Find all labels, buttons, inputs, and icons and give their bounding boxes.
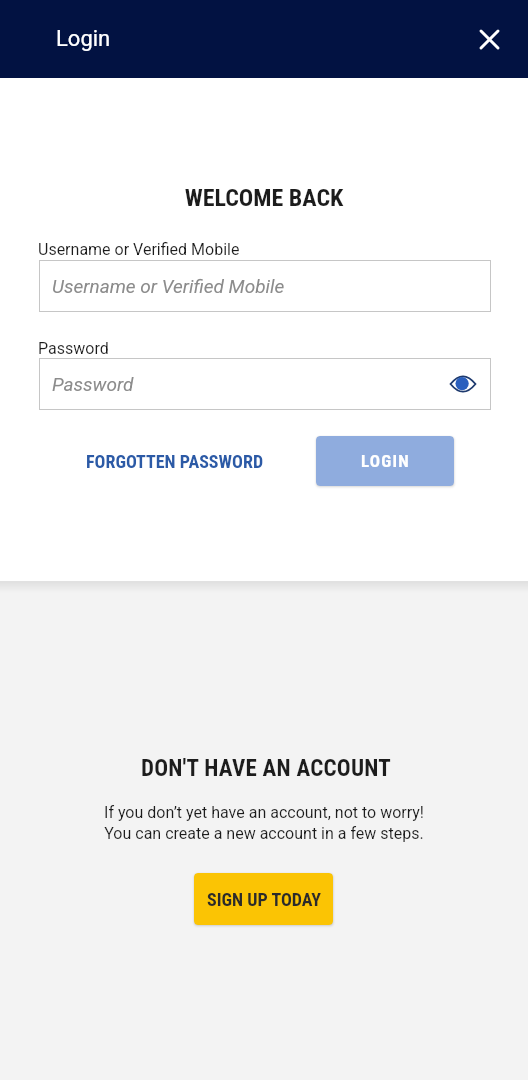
staticText: Username or Verified Mobile [52,275,285,297]
button[interactable]: Password [39,358,491,410]
staticText: Password [52,373,134,395]
staticText: WELCOME BACK [0,184,528,212]
staticText: DON'T HAVE AN ACCOUNT [2,755,528,782]
staticText: FORGOTTEN PASSWORD [86,451,264,472]
button[interactable]: SIGN UP TODAY [194,873,333,925]
staticText: Password [38,339,109,358]
button[interactable]: Show password [446,367,480,401]
staticText: Login [56,26,111,52]
button[interactable]: Username or Verified Mobile [39,260,491,312]
button[interactable]: Close [466,16,512,62]
button[interactable]: FORGOTTEN PASSWORD [74,436,276,486]
staticText: Username or Verified Mobile [38,240,240,259]
staticText: SIGN UP TODAY [207,889,321,910]
button[interactable]: LOGIN [316,436,454,486]
staticText: If you don’t yet have an account, not to… [0,803,528,843]
staticText: LOGIN [361,451,410,471]
